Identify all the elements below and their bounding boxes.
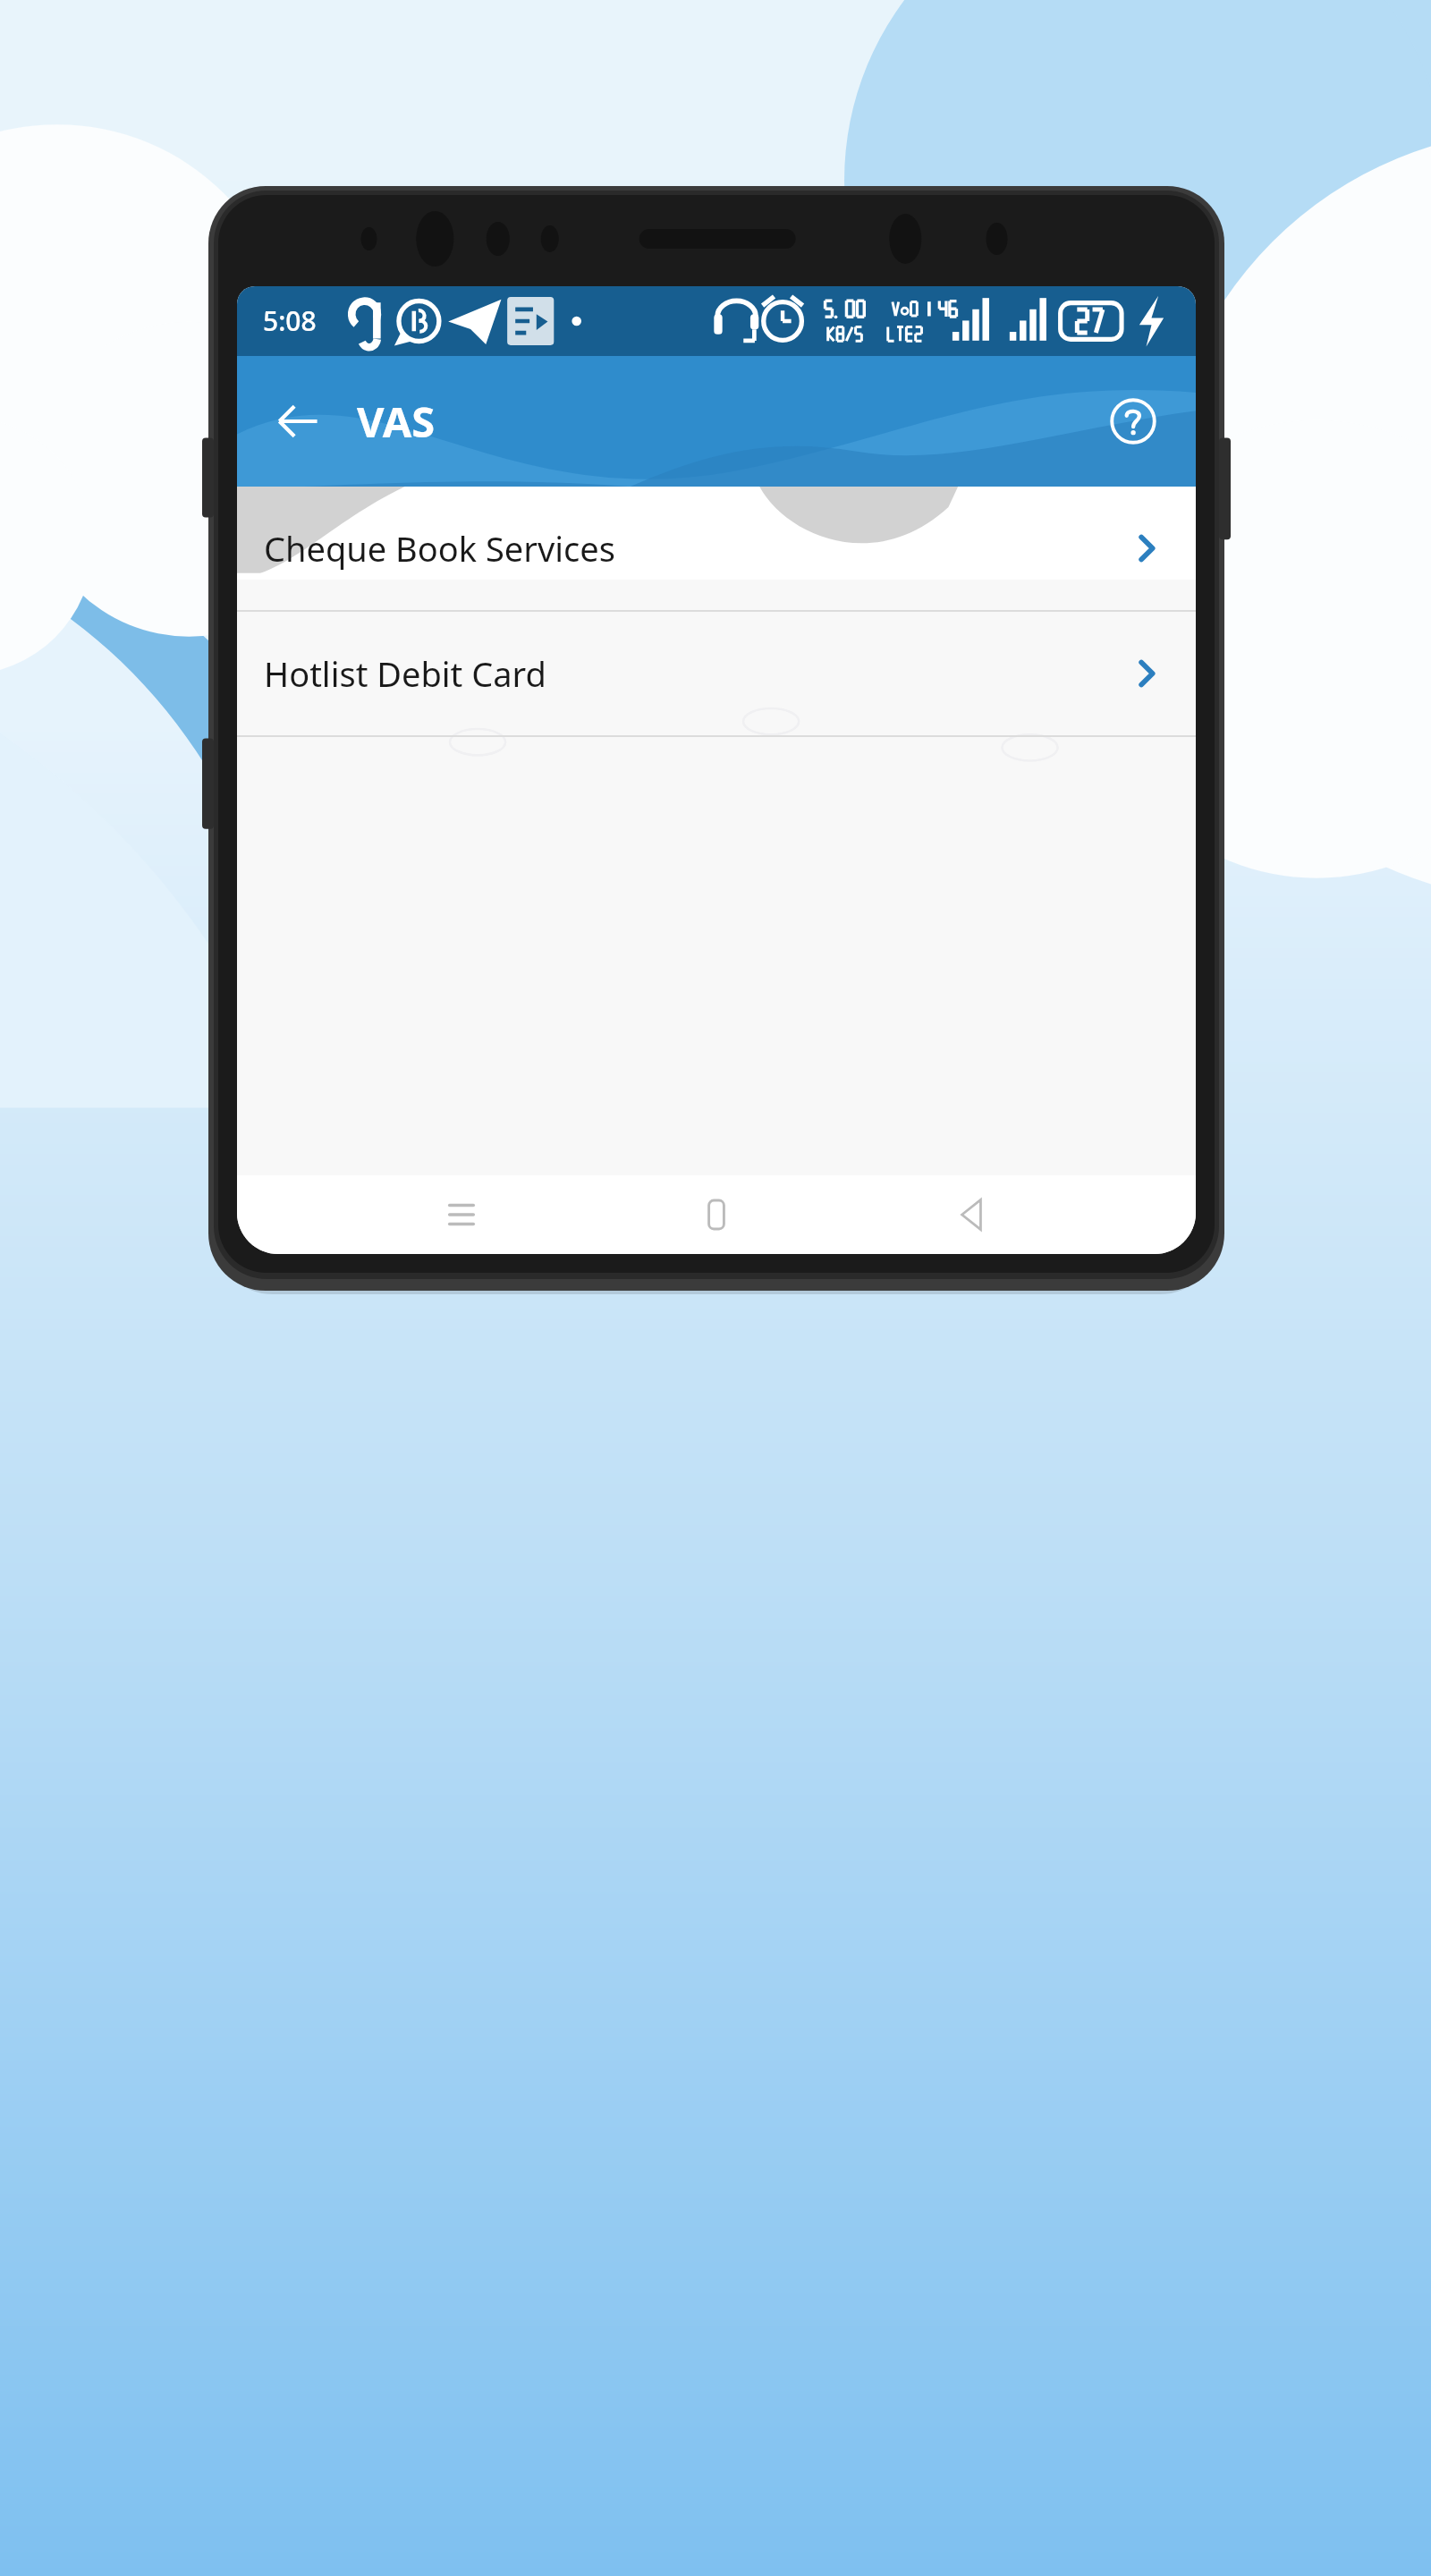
button[interactable]: Home (677, 1175, 756, 1254)
button[interactable]: Help (1094, 382, 1173, 461)
button[interactable]: Back (932, 1175, 1011, 1254)
button[interactable]: Back (260, 384, 335, 459)
staticText: 5:08 (263, 302, 317, 339)
staticText: VAS (357, 393, 436, 450)
button[interactable]: Hotlist Debit Card (237, 612, 1196, 735)
button[interactable]: Recent apps (422, 1175, 501, 1254)
staticText: Hotlist Debit Card (264, 650, 546, 697)
button[interactable]: Cheque Book Services (237, 487, 1196, 610)
staticText: Cheque Book Services (264, 525, 615, 572)
